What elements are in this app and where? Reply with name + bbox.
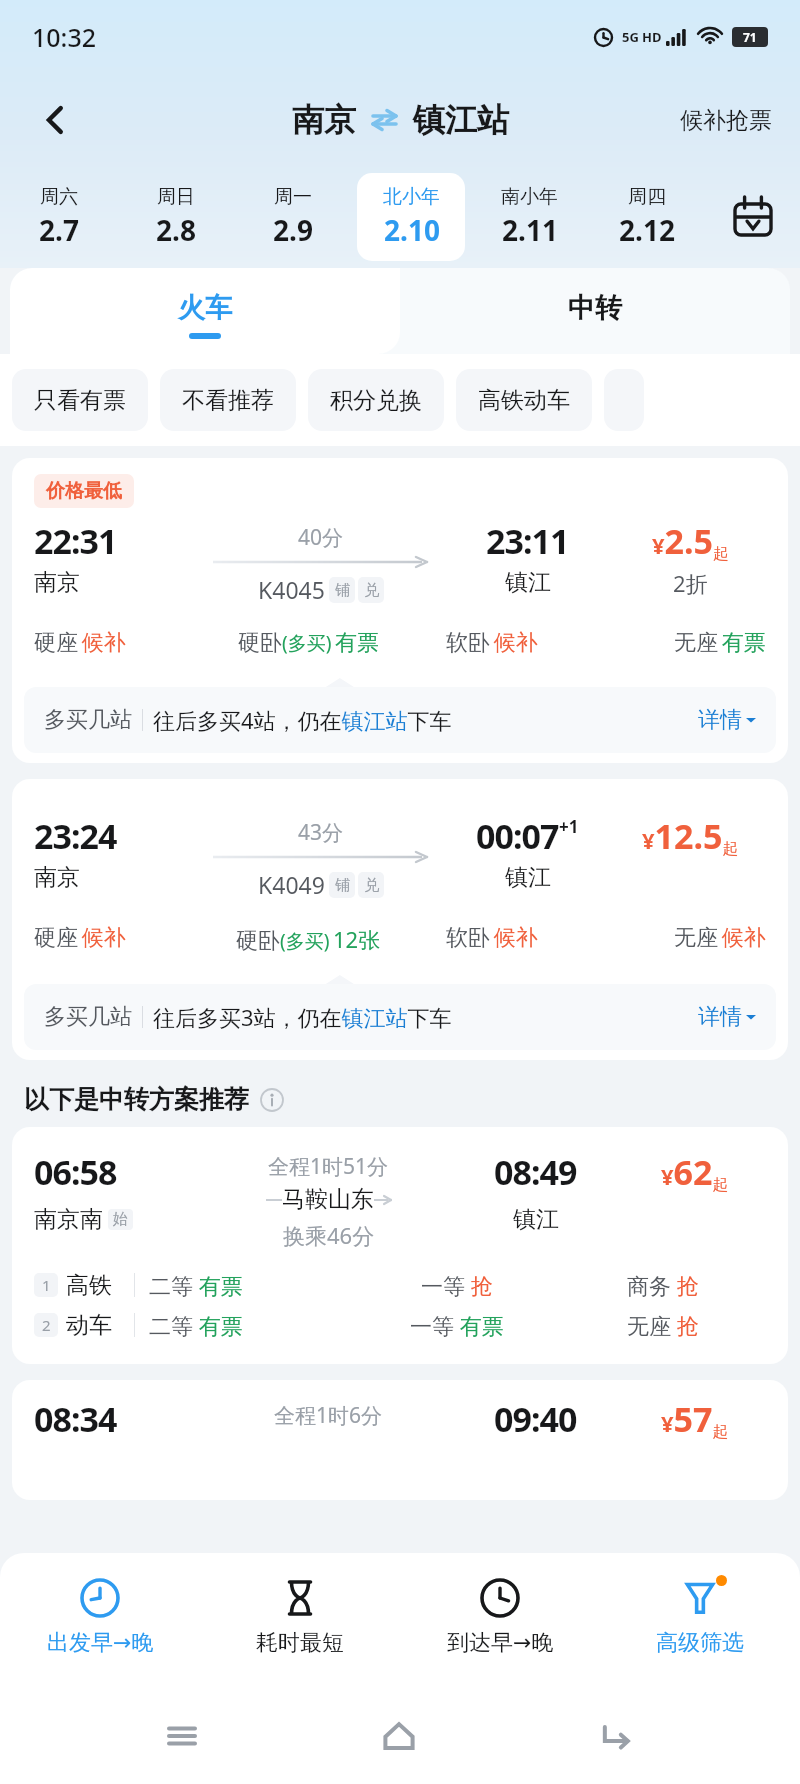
staticText: ¥2.5起 (652, 518, 730, 564)
button[interactable]: 周四 (593, 173, 701, 261)
button[interactable]: 耗时最短 (200, 1553, 400, 1688)
staticText: 镇江站 (413, 100, 509, 140)
button[interactable]: 多买几站 (24, 687, 776, 753)
button[interactable]: 06:58 (12, 1127, 788, 1364)
button[interactable]: 不看推荐 (160, 369, 296, 431)
staticText: 详情 (698, 706, 742, 734)
staticText: 铺 (335, 581, 350, 600)
staticText: 软卧 候补 (446, 629, 538, 657)
staticText: 1 (42, 1275, 51, 1295)
staticText: 出发早→晚 (47, 1629, 154, 1657)
button[interactable]: 中转 (400, 268, 790, 354)
staticText: 硬卧(多买) 12张 (236, 924, 381, 954)
staticText: 硬座 候补 (34, 924, 126, 952)
staticText: 2.8 (156, 211, 196, 249)
staticText: 全程1时6分 (274, 1401, 383, 1430)
staticText: 高级筛选 (656, 1629, 744, 1657)
button[interactable]: 积分兑换 (308, 369, 444, 431)
button[interactable]: 周一 (239, 173, 347, 261)
staticText: 只看有票 (34, 386, 126, 415)
staticText: ¥57起 (661, 1396, 729, 1442)
staticText: 2.7 (39, 211, 79, 249)
staticText: K4049 (258, 869, 325, 900)
staticText: 以下是中转方案推荐 (24, 1084, 249, 1115)
staticText: 08:34 (34, 1396, 117, 1442)
staticText: 43分 (298, 818, 344, 847)
staticText: 往后多买3站，仍在镇江站下车 (153, 1002, 452, 1032)
staticText: 北小年 (383, 185, 440, 209)
staticText: 06:58 (34, 1149, 117, 1195)
button[interactable]: 北小年 (357, 173, 465, 261)
staticText: 71 (743, 29, 757, 45)
staticText: 南京 (292, 100, 356, 140)
button[interactable]: 周日 (122, 173, 229, 261)
staticText: HD (642, 28, 662, 46)
button[interactable]: 到达早→晚 (400, 1553, 600, 1688)
button[interactable]: 出发早→晚 (0, 1553, 200, 1688)
button[interactable]: 价格最低 (12, 458, 788, 763)
staticText: 商务 抢 (627, 1270, 699, 1300)
button[interactable]: Back (24, 89, 86, 151)
button[interactable]: 多买几站 (24, 984, 776, 1050)
staticText: 火车 (178, 291, 232, 325)
staticText: 候补抢票 (680, 106, 772, 135)
button[interactable]: 23:24 (12, 779, 788, 1060)
staticText: 2.11 (502, 211, 558, 249)
button[interactable]: 南小年 (475, 173, 583, 261)
button[interactable]: 周六 (5, 173, 112, 261)
staticText: 南京 (34, 863, 80, 892)
staticText: 高铁动车 (478, 386, 570, 415)
staticText: 价格最低 (46, 479, 122, 503)
staticText: 马鞍山东 (282, 1185, 374, 1214)
staticText: 硬卧(多买) 有票 (238, 629, 380, 657)
button[interactable]: Calendar (706, 166, 800, 268)
staticText: 动车 (66, 1311, 134, 1340)
staticText: 2.12 (619, 211, 675, 249)
staticText: 镇江 (513, 1205, 559, 1234)
button[interactable]: 08:34 (12, 1380, 788, 1500)
staticText: 二等 有票 (149, 1270, 243, 1300)
staticText: 积分兑换 (330, 386, 422, 415)
staticText: 周六 (40, 185, 78, 209)
button[interactable]: Back (582, 1701, 652, 1771)
button[interactable]: Home (364, 1701, 434, 1771)
staticText: 00:07 (476, 813, 559, 859)
button[interactable]: 只看有票 (12, 369, 148, 431)
staticText: 往后多买4站，仍在镇江站下车 (153, 705, 452, 735)
staticText: 详情 (698, 1003, 742, 1031)
staticText: 40分 (298, 523, 344, 552)
staticText: 兑 (364, 581, 379, 600)
staticText: 到达早→晚 (447, 1629, 554, 1657)
staticText: 一等 有票 (410, 1310, 504, 1340)
button[interactable]: 火车 (10, 268, 400, 354)
staticText: 高铁 (66, 1271, 134, 1300)
staticText: 南京南 (34, 1205, 103, 1234)
staticText: 23:24 (34, 813, 117, 859)
staticText: 08:49 (494, 1149, 577, 1195)
staticText: 无座 有票 (674, 629, 766, 657)
staticText: K4045 (258, 574, 325, 605)
staticText: 换乘46分 (283, 1220, 375, 1250)
button[interactable]: 候补抢票 (672, 98, 780, 143)
staticText: 南小年 (501, 185, 558, 209)
staticText: 不看推荐 (182, 386, 274, 415)
staticText: 一等 抢 (421, 1270, 493, 1300)
staticText: ¥62起 (661, 1149, 729, 1195)
button[interactable]: 高级筛选 (600, 1553, 800, 1688)
staticText: 23:11 (486, 518, 569, 564)
staticText: 多买几站 (44, 1003, 132, 1031)
staticText: 中转 (568, 291, 622, 325)
staticText: 铺 (335, 876, 350, 895)
staticText: 二等 有票 (149, 1310, 243, 1340)
staticText: 始 (113, 1210, 128, 1229)
button[interactable]: Info (259, 1087, 285, 1113)
staticText: 2.9 (273, 211, 313, 249)
staticText: 2折 (673, 568, 708, 598)
staticText: 镇江 (505, 568, 551, 597)
staticText: 耗时最短 (256, 1629, 344, 1657)
staticText: 周一 (274, 185, 312, 209)
button[interactable]: 高铁动车 (456, 369, 592, 431)
button[interactable]: Recents (147, 1701, 217, 1771)
staticText: 2 (42, 1315, 51, 1335)
